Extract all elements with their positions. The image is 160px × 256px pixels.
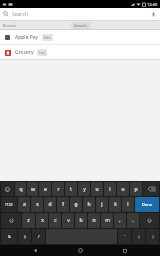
staticText: q [19, 186, 23, 193]
staticText: o [121, 186, 125, 193]
button[interactable]: p [130, 182, 142, 196]
button[interactable]: Search [0, 8, 160, 20]
staticText: Grocery [15, 49, 34, 56]
staticText: z [27, 217, 30, 224]
button[interactable]: h [83, 197, 95, 212]
staticText: / [38, 234, 40, 239]
staticText: Search [74, 23, 87, 28]
staticText: x [41, 217, 44, 224]
staticText: k [114, 201, 117, 208]
button[interactable]: a [18, 197, 30, 212]
button[interactable]: / [32, 229, 45, 244]
staticText: j [101, 201, 103, 208]
button[interactable]: ' [118, 229, 131, 244]
button[interactable]: u [91, 182, 103, 196]
button[interactable]: b [75, 213, 87, 228]
staticText: 12:00 [147, 2, 158, 7]
button[interactable]: Voice input [18, 229, 31, 244]
button[interactable]: m [101, 213, 113, 228]
button[interactable]: q [15, 182, 26, 196]
staticText: . [132, 217, 134, 224]
staticText: w [31, 186, 35, 193]
button[interactable]: Recent apps [115, 245, 135, 256]
button[interactable]: t [65, 182, 77, 196]
staticText: s [36, 201, 39, 208]
button[interactable]: c [49, 213, 61, 228]
button[interactable]: f [57, 197, 69, 212]
staticText: v [67, 217, 70, 224]
button[interactable]: Apple Pay [0, 30, 160, 44]
button[interactable]: y [78, 182, 90, 196]
staticText: b [79, 217, 83, 224]
button[interactable]: Grocery [0, 45, 160, 59]
button[interactable]: n [88, 213, 100, 228]
button[interactable]: x [36, 213, 48, 228]
staticText: u [95, 186, 99, 193]
button[interactable]: Left [132, 229, 145, 244]
staticText: & [8, 234, 11, 239]
button[interactable]: Home [70, 245, 90, 256]
staticText: , [119, 217, 121, 224]
button[interactable]: l [122, 197, 134, 212]
button[interactable]: , [114, 213, 126, 228]
staticText: Info [44, 35, 51, 40]
staticText: y [83, 186, 86, 193]
button[interactable]: Voice search [150, 11, 157, 18]
button[interactable]: s [31, 197, 43, 212]
button[interactable]: & [1, 229, 17, 244]
button[interactable]: . [127, 213, 139, 228]
staticText: g [74, 201, 78, 208]
staticText: Recent [3, 23, 16, 28]
button[interactable]: o [117, 182, 129, 196]
staticText: a [23, 201, 26, 208]
staticText: t [70, 186, 72, 193]
button[interactable]: i [104, 182, 116, 196]
button[interactable]: v [62, 213, 74, 228]
button[interactable]: r [52, 182, 64, 196]
staticText: e [44, 186, 47, 193]
staticText: n [92, 217, 96, 224]
staticText: Apple Pay [15, 34, 39, 41]
button[interactable]: k [109, 197, 121, 212]
staticText: m [105, 217, 110, 224]
button[interactable]: Shift [1, 213, 21, 228]
button[interactable]: Right [146, 229, 159, 244]
staticText: r [57, 186, 60, 193]
staticText: d [48, 201, 52, 208]
staticText: l [127, 201, 129, 208]
button[interactable]: d [44, 197, 56, 212]
button[interactable]: e [39, 182, 51, 196]
button[interactable]: Shift [140, 213, 159, 228]
button[interactable]: Back [25, 245, 45, 256]
staticText: h [87, 201, 91, 208]
button[interactable]: Done [135, 197, 159, 212]
staticText: List [39, 50, 45, 55]
button[interactable]: z [22, 213, 35, 228]
staticText: f [62, 201, 64, 208]
button[interactable]: Backspace [143, 182, 159, 196]
staticText: ?123 [5, 202, 13, 207]
button[interactable]: g [70, 197, 82, 212]
button[interactable]: j [96, 197, 108, 212]
staticText: Done [142, 202, 153, 207]
staticText: c [54, 217, 57, 224]
button[interactable] [1, 182, 14, 196]
button[interactable]: ?123 [1, 197, 17, 212]
staticText: ' [124, 234, 125, 239]
staticText: p [134, 186, 138, 193]
button[interactable]: w [27, 182, 38, 196]
staticText: i [109, 186, 111, 193]
staticText: Search [12, 11, 150, 18]
button[interactable]: Search [71, 22, 90, 29]
